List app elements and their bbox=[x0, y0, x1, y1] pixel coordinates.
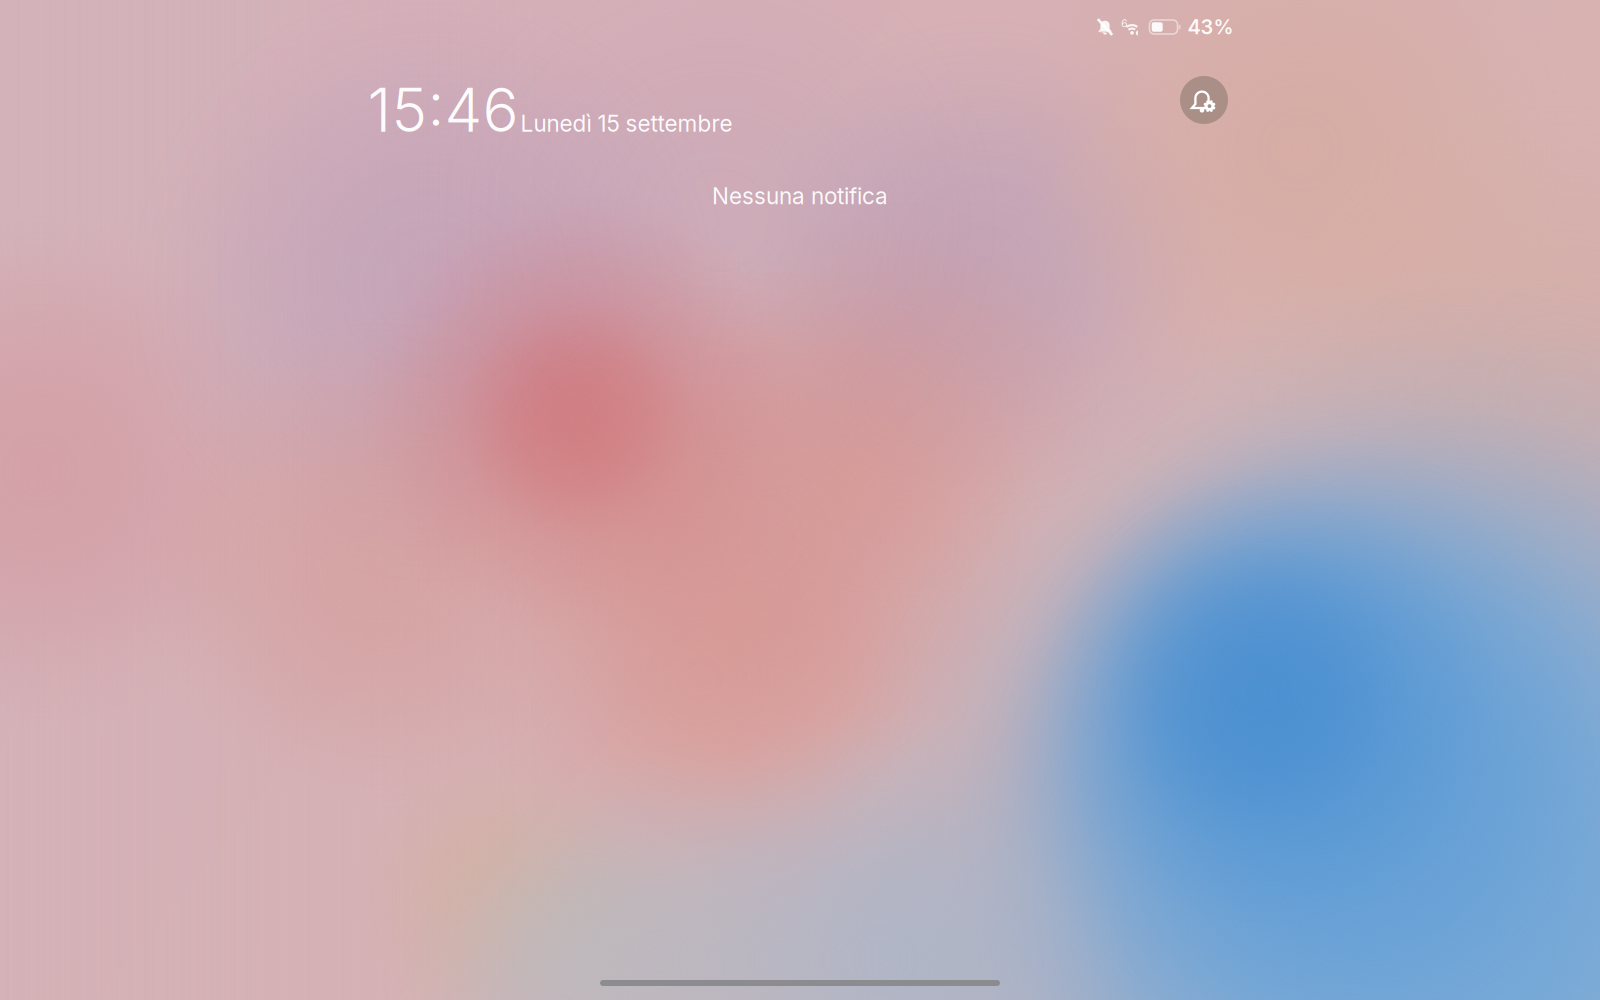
staticText: Lunedì 15 settembre bbox=[520, 110, 732, 137]
staticText: 43% bbox=[1187, 15, 1233, 39]
button[interactable]: Impostazioni notifiche bbox=[1180, 76, 1228, 124]
staticText: Nessuna notifica bbox=[712, 182, 888, 210]
staticText: 6 bbox=[1121, 17, 1128, 30]
staticText: 15:46 bbox=[367, 74, 518, 146]
